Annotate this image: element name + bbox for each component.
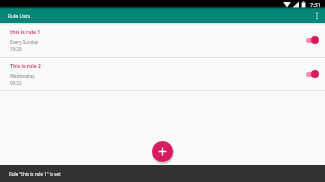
staticText: Every Sunday <box>10 39 39 45</box>
staticText: Rule "this is rule 1" is set <box>9 171 61 177</box>
staticText: Rule Lists <box>8 13 31 20</box>
button[interactable] <box>313 12 321 20</box>
staticText: 19:28 <box>10 46 22 52</box>
staticText: Wednesday <box>10 73 35 79</box>
staticText: this is rule 1 <box>10 29 41 36</box>
staticText: This is rule 2 <box>10 63 41 70</box>
button[interactable]: This is rule 2 <box>0 58 325 90</box>
staticText: 09:32 <box>10 80 22 86</box>
staticText: 7:31 <box>310 1 321 8</box>
button[interactable] <box>152 141 173 162</box>
button[interactable]: this is rule 1 <box>0 23 325 57</box>
